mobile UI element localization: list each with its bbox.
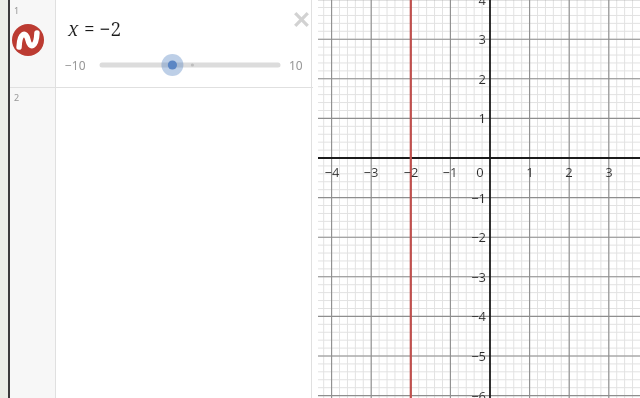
staticText: 0	[472, 163, 488, 398]
staticText: 1	[466, 109, 486, 398]
button[interactable]: −4	[318, 0, 640, 398]
staticText: 3	[466, 30, 486, 398]
staticText: −2	[400, 163, 422, 398]
button[interactable]: Toggle plot color	[12, 24, 44, 56]
staticText: −4	[466, 307, 486, 398]
staticText: = −2	[84, 16, 122, 42]
staticText: 2	[14, 91, 20, 103]
staticText: −2	[466, 228, 486, 398]
staticText: −1	[466, 189, 486, 398]
staticText: −3	[466, 268, 486, 398]
staticText: 2	[466, 70, 486, 398]
staticText: 1	[519, 163, 541, 398]
button[interactable]: Delete expression	[288, 6, 314, 32]
staticText: 3	[598, 163, 620, 398]
staticText: −10	[65, 57, 86, 73]
staticText: −3	[360, 163, 382, 398]
staticText: −5	[466, 347, 486, 398]
staticText: −6	[466, 387, 486, 398]
staticText: 4	[466, 0, 486, 389]
button[interactable]: −10	[56, 50, 311, 80]
staticText: 10	[289, 57, 303, 73]
staticText: x	[68, 16, 79, 42]
staticText: −1	[439, 163, 461, 398]
staticText: 1	[14, 4, 20, 16]
staticText: 2	[558, 163, 580, 398]
staticText: −4	[321, 163, 343, 398]
